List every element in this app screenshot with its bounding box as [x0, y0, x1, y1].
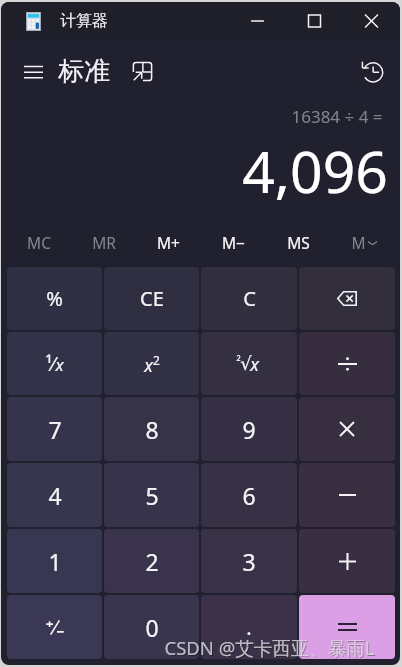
button[interactable]: 0 [104, 595, 199, 659]
button[interactable]: MC [6, 224, 71, 260]
staticText: 2 [145, 546, 159, 577]
button[interactable]: 6 [201, 463, 297, 527]
button[interactable]: 1 [7, 529, 102, 593]
staticText: x [55, 353, 64, 376]
staticText: . [246, 614, 252, 641]
staticText: M+ [157, 232, 180, 253]
button[interactable]: Backspace [299, 267, 395, 330]
button[interactable]: % [7, 267, 102, 330]
staticText: 8 [145, 414, 159, 445]
staticText: 16384 ÷ 4 = [291, 105, 383, 128]
button[interactable] [299, 397, 395, 461]
staticText: ¹⁄ [45, 351, 55, 377]
staticText: x [144, 353, 153, 378]
staticText: M [351, 232, 366, 253]
staticText: 0 [145, 612, 159, 643]
button[interactable]: 8 [104, 397, 199, 461]
staticText: 2 [153, 352, 160, 368]
button[interactable]: Close [343, 2, 400, 40]
staticText: 1 [48, 546, 62, 577]
button[interactable]: 2 [104, 529, 199, 593]
staticText: 5 [145, 480, 159, 511]
button[interactable]: Square root [201, 332, 297, 395]
staticText: ² [236, 353, 241, 369]
button[interactable]: Positive negative [7, 595, 102, 659]
staticText: 4,096 [242, 132, 388, 210]
staticText: 3 [242, 546, 256, 577]
staticText: MS [287, 232, 310, 253]
button[interactable]: History [349, 48, 395, 94]
staticText: MR [92, 232, 116, 253]
staticText: C [243, 285, 256, 312]
staticText: 计算器 [60, 11, 108, 31]
button[interactable]: Equals [299, 595, 395, 659]
button[interactable]: Maximize [286, 2, 343, 40]
staticText: CE [140, 285, 164, 312]
button[interactable]: Minimize [229, 2, 286, 40]
staticText: 4 [48, 480, 62, 511]
button[interactable]: 4 [7, 463, 102, 527]
staticText: x [250, 352, 259, 377]
staticText: 6 [242, 480, 256, 511]
button[interactable]: Square [104, 332, 199, 395]
staticText: % [46, 285, 63, 312]
button[interactable]: CE [104, 267, 199, 330]
button[interactable]: MS [266, 224, 331, 260]
staticText: M− [222, 232, 245, 253]
staticText: 标准 [58, 55, 110, 88]
button[interactable]: . [201, 595, 297, 659]
staticText: √ [240, 353, 252, 374]
button[interactable]: C [201, 267, 297, 330]
staticText: CSDN @艾卡西亚、暴雨L [164, 635, 375, 660]
button[interactable]: Keep on top [124, 53, 160, 89]
staticText: CSDN @艾卡西亚、暴雨L [165, 636, 376, 661]
staticText: MC [27, 232, 51, 253]
button[interactable]: Reciprocal [7, 332, 102, 395]
button[interactable]: 7 [7, 397, 102, 461]
button[interactable] [299, 332, 395, 395]
button[interactable]: 5 [104, 463, 199, 527]
button[interactable]: 9 [201, 397, 297, 461]
button[interactable] [299, 463, 395, 527]
button[interactable]: M− [201, 224, 266, 260]
button[interactable]: Memory list [331, 224, 396, 260]
button[interactable]: M+ [136, 224, 201, 260]
staticText: 7 [48, 414, 62, 445]
button[interactable]: MR [71, 224, 136, 260]
button[interactable]: 3 [201, 529, 297, 593]
staticText: 9 [242, 414, 256, 445]
button[interactable]: Menu [13, 51, 53, 91]
button[interactable] [299, 529, 395, 593]
